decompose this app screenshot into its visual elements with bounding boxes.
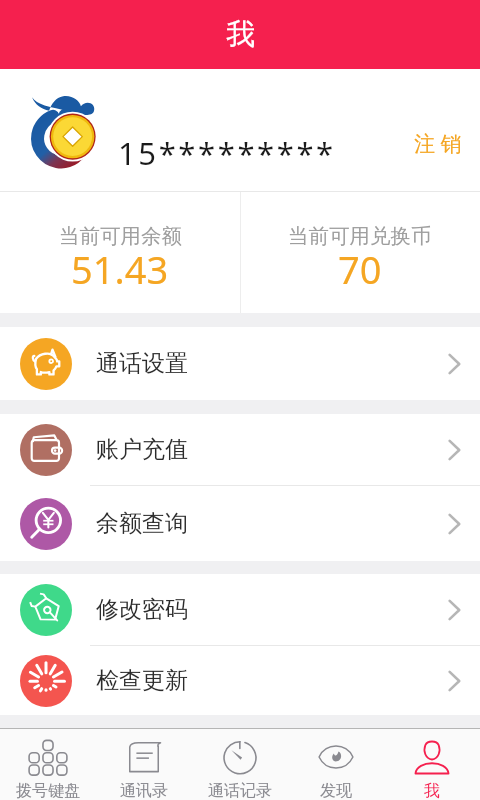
button[interactable]: 拨号键盘 [0, 729, 96, 800]
staticText: 我 [424, 781, 440, 800]
staticText: 发现 [320, 781, 352, 800]
staticText: 当前可用余额 [59, 223, 182, 249]
staticText: 51.43 [71, 243, 169, 295]
button[interactable]: 修改密码 [0, 574, 480, 645]
button[interactable]: 注 销 [408, 95, 468, 166]
button[interactable]: 账户充值 [0, 414, 480, 485]
staticText: 修改密码 [96, 595, 188, 624]
button[interactable]: 通话设置 [0, 327, 480, 400]
staticText: 15********* [118, 132, 336, 174]
staticText: 账户充值 [96, 435, 188, 464]
staticText: 70 [338, 243, 382, 295]
button[interactable]: 我 [384, 729, 480, 800]
button[interactable]: 当前可用兑换币 [240, 192, 480, 313]
staticText: 通讯录 [120, 781, 168, 800]
button[interactable]: 通讯录 [96, 729, 192, 800]
staticText: 通话设置 [96, 349, 188, 378]
staticText: 通话记录 [208, 781, 272, 800]
staticText: 拨号键盘 [16, 781, 80, 800]
staticText: 注 销 [414, 129, 462, 158]
staticText: 当前可用兑换币 [288, 223, 432, 249]
button[interactable]: 当前可用余额 [0, 192, 240, 313]
button[interactable]: 通话记录 [192, 729, 288, 800]
staticText: 我 [226, 16, 255, 53]
button[interactable]: 检查更新 [0, 646, 480, 715]
staticText: 检查更新 [96, 666, 188, 695]
button[interactable]: 余额查询 [0, 486, 480, 561]
staticText: 余额查询 [96, 509, 188, 538]
button[interactable]: 发现 [288, 729, 384, 800]
